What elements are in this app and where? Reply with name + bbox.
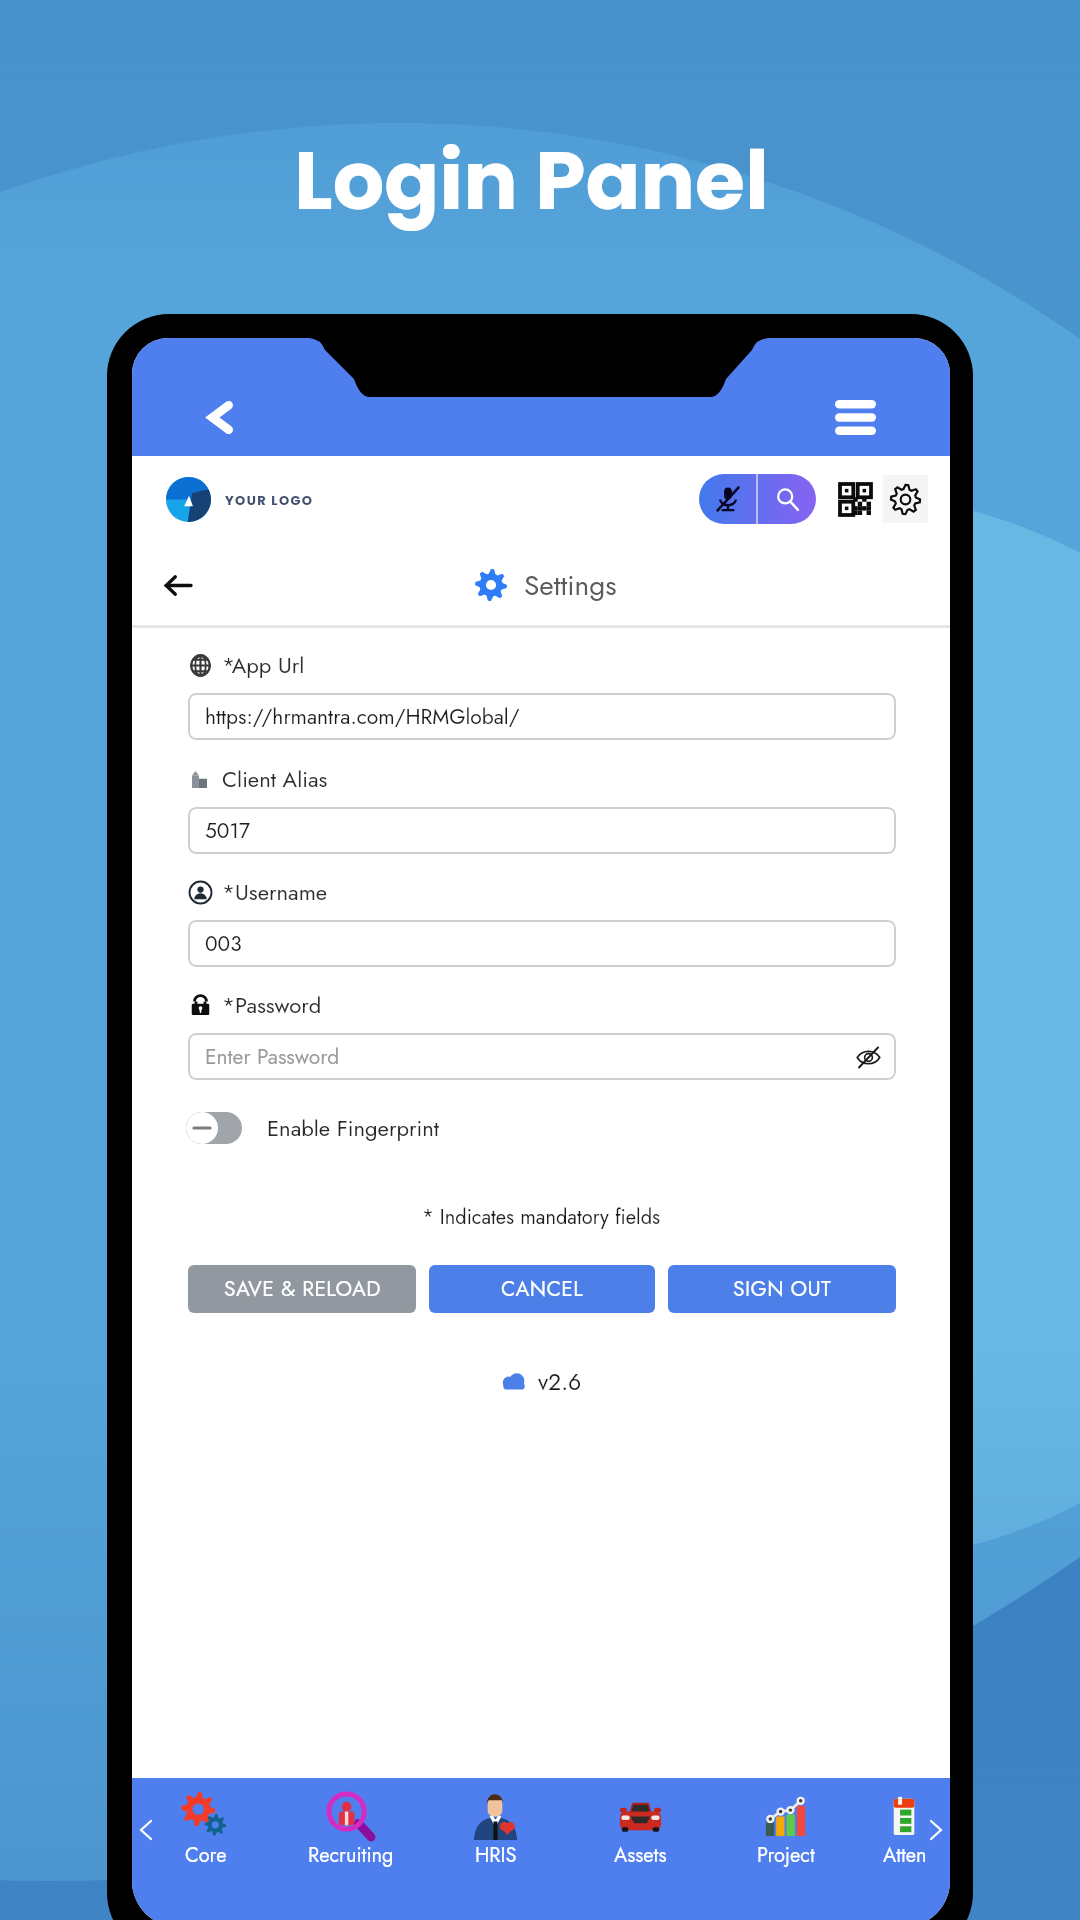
staticText: Client Alias [222, 763, 328, 795]
button[interactable]: Settings [883, 475, 928, 523]
button[interactable]: Assets [568, 1778, 713, 1870]
staticText: Settings [524, 565, 617, 605]
staticText: *App Url [222, 649, 305, 681]
staticText: Enter Password [205, 1042, 340, 1072]
staticText: *Username [222, 876, 328, 908]
button[interactable]: Recruiting [278, 1778, 423, 1870]
staticText: v2.6 [538, 1365, 582, 1398]
button[interactable]: Project [713, 1778, 858, 1870]
staticText: *Password [222, 989, 322, 1021]
button[interactable]: Next [922, 1816, 950, 1844]
staticText: CANCEL [501, 1274, 583, 1304]
button[interactable]: SIGN OUT [668, 1265, 896, 1313]
staticText: SAVE & RELOAD [224, 1274, 381, 1304]
button[interactable]: Scan QR code [838, 482, 872, 516]
button[interactable]: Previous [132, 1816, 160, 1844]
button[interactable]: SAVE & RELOAD [188, 1265, 416, 1313]
staticText: YOUR LOGO [225, 491, 314, 509]
staticText: Recruiting [308, 1841, 394, 1870]
staticText: 5017 [205, 816, 250, 846]
button[interactable]: Mute microphone [699, 474, 816, 524]
button[interactable]: Enable Fingerprint [186, 1112, 440, 1144]
staticText: https://hrmantra.com/HRMGlobal/ [205, 702, 520, 732]
button[interactable]: Back [188, 385, 252, 449]
button[interactable]: 5017 [188, 807, 896, 854]
staticText: HRIS [475, 1841, 517, 1870]
button[interactable]: Show password [850, 1039, 886, 1075]
staticText: * Indicates mandatory fields [422, 1203, 661, 1232]
other: Mute microphone [699, 474, 756, 524]
button[interactable]: Core [133, 1778, 278, 1870]
other: Search [758, 474, 816, 524]
button[interactable]: 003 [188, 920, 896, 967]
staticText: Core [185, 1841, 227, 1870]
button[interactable]: Navigate back [150, 558, 204, 612]
button[interactable]: CANCEL [429, 1265, 655, 1313]
button[interactable]: HRIS [423, 1778, 568, 1870]
staticText: Atten [883, 1841, 927, 1870]
button[interactable]: Menu [823, 385, 887, 449]
button[interactable]: Enter Password [188, 1033, 896, 1080]
staticText: Enable Fingerprint [267, 1112, 440, 1144]
staticText: Login Panel [294, 124, 769, 237]
staticText: 003 [205, 929, 242, 959]
staticText: SIGN OUT [733, 1274, 832, 1304]
staticText: Assets [614, 1841, 667, 1870]
button[interactable]: https://hrmantra.com/HRMGlobal/ [188, 693, 896, 740]
button[interactable]: Atten [858, 1778, 950, 1870]
staticText: Project [757, 1841, 815, 1870]
